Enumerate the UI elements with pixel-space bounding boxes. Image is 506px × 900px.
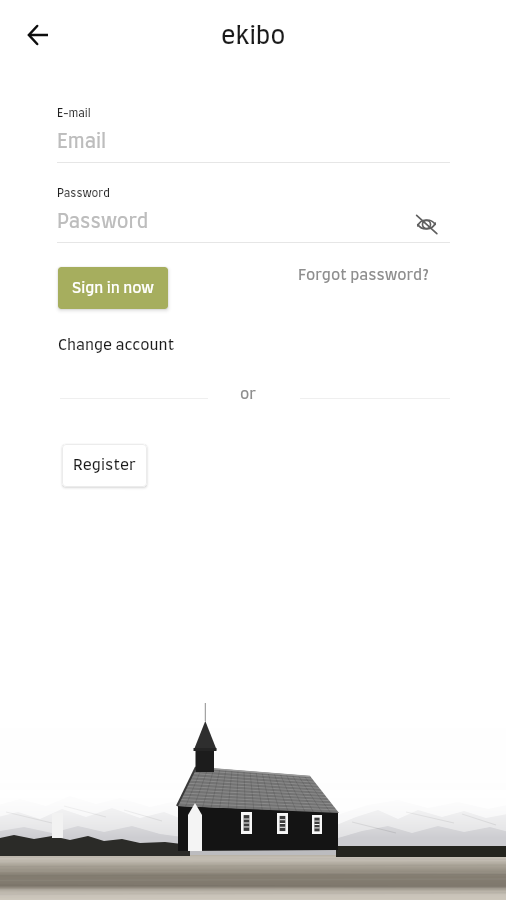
staticText: Sign in now bbox=[72, 281, 154, 296]
button[interactable]: Sign in now bbox=[58, 267, 168, 309]
button[interactable]: Show password bbox=[407, 205, 445, 243]
staticText: Forgot password? bbox=[298, 268, 429, 283]
staticText: ekibo bbox=[221, 25, 286, 49]
staticText: E-mail bbox=[57, 108, 91, 119]
staticText: Password bbox=[57, 188, 110, 199]
button[interactable]: Change account bbox=[57, 337, 176, 354]
staticText: or bbox=[240, 387, 257, 402]
staticText: Change account bbox=[58, 338, 175, 353]
button[interactable]: Forgot password? bbox=[294, 264, 433, 287]
staticText: Email bbox=[57, 133, 107, 152]
button[interactable]: Back bbox=[16, 13, 60, 57]
staticText: Password bbox=[57, 213, 149, 232]
staticText: Register bbox=[73, 458, 136, 473]
button[interactable]: Register bbox=[62, 444, 147, 487]
